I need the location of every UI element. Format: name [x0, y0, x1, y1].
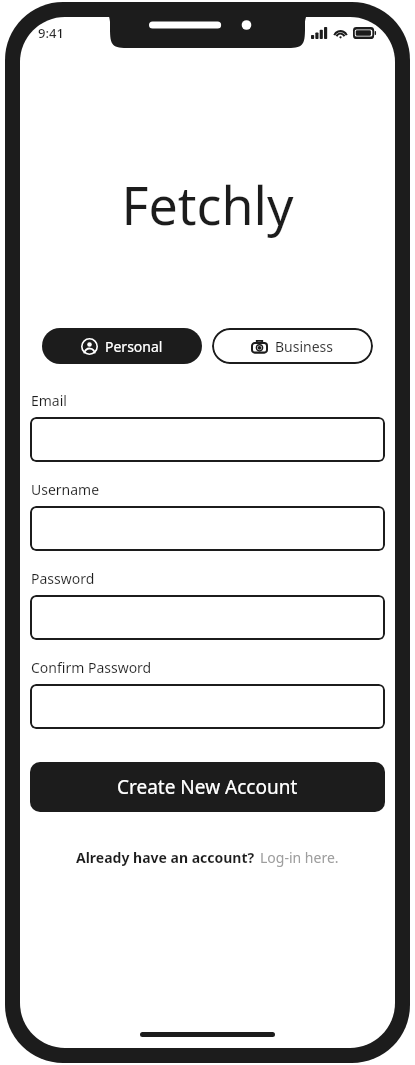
staticText: Business: [275, 337, 334, 356]
button[interactable]: [30, 506, 385, 551]
button[interactable]: Personal: [42, 328, 202, 364]
button[interactable]: Create New Account: [30, 762, 385, 812]
button[interactable]: Log-in here.: [260, 848, 339, 867]
staticText: 9:41: [38, 24, 64, 42]
staticText: Already have an account?: [76, 848, 255, 867]
staticText: Log-in here.: [260, 848, 339, 867]
button[interactable]: [30, 684, 385, 729]
staticText: Confirm Password: [31, 658, 152, 677]
button[interactable]: [30, 417, 385, 462]
staticText: Password: [31, 569, 95, 588]
staticText: Email: [31, 391, 67, 410]
staticText: Username: [31, 480, 100, 499]
staticText: Personal: [105, 337, 163, 356]
staticText: Create New Account: [117, 774, 298, 800]
staticText: Fetchly: [121, 169, 294, 240]
button[interactable]: Business: [212, 328, 373, 364]
button[interactable]: [30, 595, 385, 640]
